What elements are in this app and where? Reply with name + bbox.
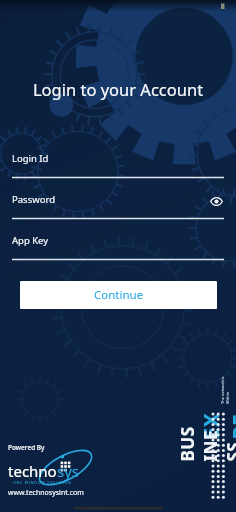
staticText: BUSINESS	[175, 421, 236, 461]
staticText: ONE WINDOW SOLUTION	[13, 480, 72, 485]
button[interactable]: www.technosysint.com	[8, 488, 84, 498]
button[interactable]: App Key	[12, 234, 224, 260]
staticText: App Key	[12, 234, 49, 247]
staticText: Powered By	[8, 443, 45, 452]
staticText: Password	[12, 193, 55, 206]
staticText: Login to your Account	[0, 78, 236, 100]
button[interactable]: Password	[12, 193, 224, 219]
staticText: Login Id	[12, 152, 49, 165]
staticText: The network is Within	[220, 364, 230, 404]
button[interactable]: Show password	[208, 193, 224, 209]
staticText: EXPERT	[196, 399, 236, 439]
staticText: Continue	[94, 287, 144, 303]
button[interactable]: Continue	[20, 281, 217, 309]
staticText: techno	[8, 461, 57, 481]
staticText: sys	[57, 461, 80, 481]
button[interactable]: Login Id	[12, 152, 224, 178]
